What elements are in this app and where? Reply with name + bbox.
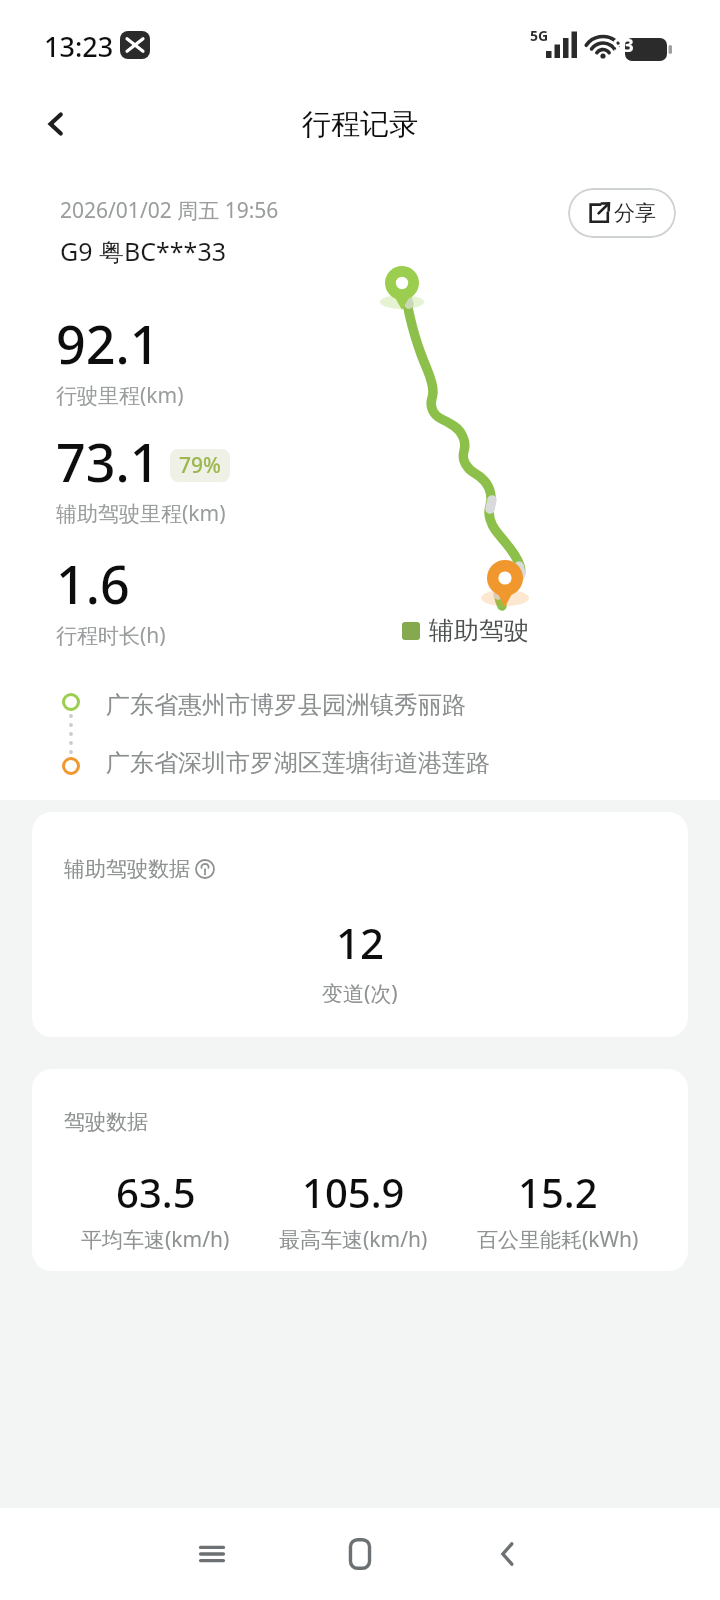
- staticText: 最高车速(km/h): [279, 1225, 428, 1254]
- staticText: 百公里能耗(kWh): [477, 1225, 639, 1254]
- button[interactable]: 分享: [568, 188, 676, 238]
- staticText: 辅助驾驶: [429, 615, 529, 646]
- staticText: 广东省深圳市罗湖区莲塘街道港莲路: [106, 748, 490, 778]
- staticText: 2026/01/02 周五 19:56: [60, 196, 279, 225]
- staticText: G9 粤BC***33: [60, 234, 226, 268]
- button[interactable]: Home: [286, 1508, 434, 1600]
- staticText: 广东省惠州市博罗县园洲镇秀丽路: [106, 690, 466, 720]
- button[interactable]: 驾驶数据: [32, 1069, 688, 1271]
- staticText: 12: [336, 914, 385, 971]
- staticText: 5G: [530, 26, 549, 45]
- staticText: 93: [613, 33, 634, 58]
- staticText: 1.6: [56, 548, 130, 619]
- button[interactable]: 辅助驾驶数据: [32, 812, 688, 1037]
- staticText: 92.1: [56, 308, 160, 379]
- button[interactable]: Back: [434, 1508, 582, 1600]
- staticText: 分享: [614, 200, 656, 226]
- staticText: 行程记录: [302, 106, 418, 143]
- staticText: 辅助驾驶里程(km): [56, 499, 226, 528]
- staticText: 63.5: [116, 1165, 196, 1219]
- staticText: 辅助驾驶数据: [64, 856, 190, 882]
- staticText: 变道(次): [322, 979, 398, 1008]
- staticText: 行驶里程(km): [56, 381, 184, 410]
- staticText: 73.1: [56, 426, 160, 497]
- button[interactable]: Recent apps: [138, 1508, 286, 1600]
- staticText: 驾驶数据: [64, 1109, 148, 1135]
- button[interactable]: Back: [24, 86, 88, 162]
- staticText: 行程时长(h): [56, 621, 166, 650]
- staticText: 15.2: [518, 1165, 598, 1219]
- staticText: 105.9: [302, 1165, 405, 1219]
- staticText: 79%: [179, 451, 221, 480]
- staticText: 平均车速(km/h): [81, 1225, 230, 1254]
- staticText: 13:23: [44, 28, 114, 65]
